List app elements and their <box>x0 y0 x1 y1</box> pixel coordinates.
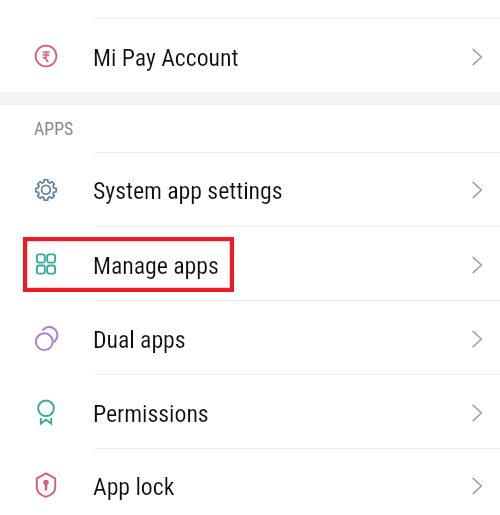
other: Open Dual apps <box>453 301 500 374</box>
staticText: Permissions <box>93 400 209 428</box>
button[interactable]: Manage apps <box>0 227 500 300</box>
staticText: System app settings <box>93 177 283 205</box>
other: Open Mi Pay Account <box>453 19 500 92</box>
other: Open Permissions <box>453 375 500 448</box>
staticText: APPS <box>34 118 74 139</box>
staticText: App lock <box>93 473 175 501</box>
button[interactable]: App lock <box>0 449 500 515</box>
staticText: Dual apps <box>93 326 186 354</box>
button[interactable]: Permissions <box>0 375 500 448</box>
staticText: Manage apps <box>93 252 219 280</box>
button[interactable]: System app settings <box>0 153 500 226</box>
other: Open System app settings <box>453 153 500 226</box>
button[interactable]: Mi Pay Account <box>0 19 500 92</box>
other: Open App lock <box>453 449 500 515</box>
other: Open Manage apps <box>453 227 500 300</box>
staticText: Mi Pay Account <box>93 44 239 72</box>
button[interactable]: Dual apps <box>0 301 500 374</box>
